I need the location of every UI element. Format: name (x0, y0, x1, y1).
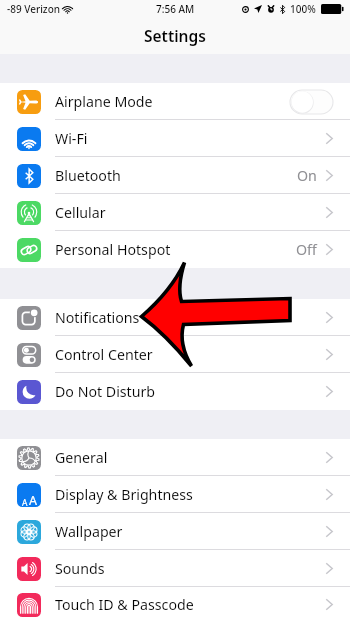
staticText: Airplane Mode (55, 92, 153, 111)
staticText: Control Center (55, 345, 153, 364)
staticText: On (297, 166, 317, 185)
button[interactable]: Airplane Mode toggle (290, 90, 333, 114)
staticText: -89 Verizon (7, 2, 61, 16)
staticText: Bluetooth (55, 166, 121, 185)
staticText: A (29, 492, 37, 507)
staticText: Sounds (55, 559, 105, 578)
button[interactable]: A (0, 476, 350, 513)
button[interactable]: Wi-Fi (0, 120, 350, 157)
button[interactable]: Airplane Mode (0, 83, 350, 120)
staticText: Touch ID & Passcode (55, 595, 194, 614)
button[interactable]: Sounds (0, 550, 350, 587)
button[interactable]: Cellular (0, 194, 350, 231)
staticText: Cellular (55, 203, 106, 222)
staticText: Wallpaper (55, 522, 123, 541)
staticText: Settings (144, 25, 206, 46)
button[interactable]: Touch ID & Passcode (0, 587, 350, 622)
staticText: A (22, 497, 28, 507)
button[interactable]: General (0, 439, 350, 476)
other: Pointer (0, 0, 350, 622)
staticText: General (55, 448, 108, 467)
button[interactable]: Personal Hotspot (0, 231, 350, 268)
staticText: Off (296, 240, 317, 259)
staticText: Wi-Fi (55, 129, 88, 148)
staticText: Personal Hotspot (55, 240, 171, 259)
button[interactable]: Do Not Disturb (0, 373, 350, 410)
button[interactable]: Wallpaper (0, 513, 350, 550)
staticText: Notifications (55, 308, 140, 327)
staticText: 100% (290, 2, 316, 16)
staticText: 7:56 AM (156, 2, 195, 16)
button[interactable]: Control Center (0, 336, 350, 373)
button[interactable]: Bluetooth (0, 157, 350, 194)
staticText: Display & Brightness (55, 485, 193, 504)
button[interactable]: Notifications (0, 299, 350, 336)
staticText: Do Not Disturb (55, 382, 156, 401)
